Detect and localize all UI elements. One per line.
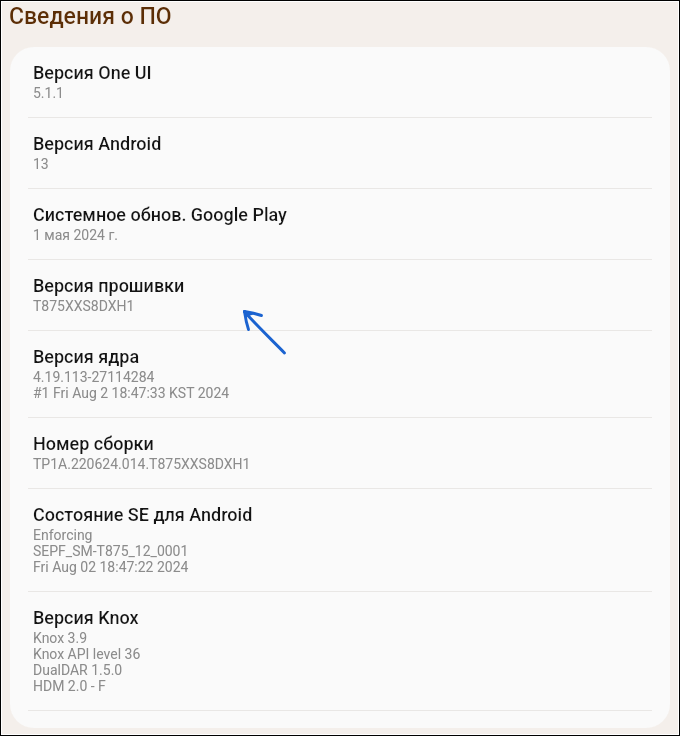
staticText: T875XXS8DXH1 xyxy=(33,298,135,314)
button[interactable]: Системное обнов. Google Play xyxy=(10,189,670,259)
button[interactable]: Версия ядра xyxy=(10,331,670,417)
button[interactable]: Версия Android xyxy=(10,118,670,188)
staticText: 5.1.1 xyxy=(33,85,64,101)
staticText: Knox 3.9 xyxy=(33,630,88,646)
staticText: Версия прошивки xyxy=(33,275,185,296)
staticText: Enforcing xyxy=(33,527,93,543)
staticText: Системное обнов. Google Play xyxy=(33,204,287,225)
staticText: Сведения о ПО xyxy=(9,3,172,30)
staticText: TP1A.220624.014.T875XXS8DXH1 xyxy=(33,456,251,472)
staticText: 13 xyxy=(33,156,49,172)
staticText: DualDAR 1.5.0 xyxy=(33,662,123,678)
button[interactable]: Версия прошивки xyxy=(10,260,670,330)
button[interactable]: Состояние SE для Android xyxy=(10,489,670,591)
staticText: SEPF_SM-T875_12_0001 xyxy=(33,543,189,559)
staticText: 1 мая 2024 г. xyxy=(33,227,119,243)
other: Annotation arrow xyxy=(240,307,292,359)
button[interactable]: Версия Knox xyxy=(10,592,670,710)
staticText: HDM 2.0 - F xyxy=(33,678,106,694)
staticText: Fri Aug 02 18:47:22 2024 xyxy=(33,559,189,575)
staticText: Номер сборки xyxy=(33,433,154,454)
staticText: 4.19.113-27114284 xyxy=(33,369,155,385)
staticText: Версия One UI xyxy=(33,62,152,83)
staticText: #1 Fri Aug 2 18:47:33 KST 2024 xyxy=(33,385,230,401)
button[interactable]: Номер сборки xyxy=(10,418,670,488)
staticText: Версия Knox xyxy=(33,607,139,628)
staticText: Knox API level 36 xyxy=(33,646,141,662)
button[interactable]: Версия One UI xyxy=(10,47,670,117)
staticText: Состояние SE для Android xyxy=(33,504,253,525)
staticText: Версия Android xyxy=(33,133,162,154)
staticText: Версия ядра xyxy=(33,346,140,367)
